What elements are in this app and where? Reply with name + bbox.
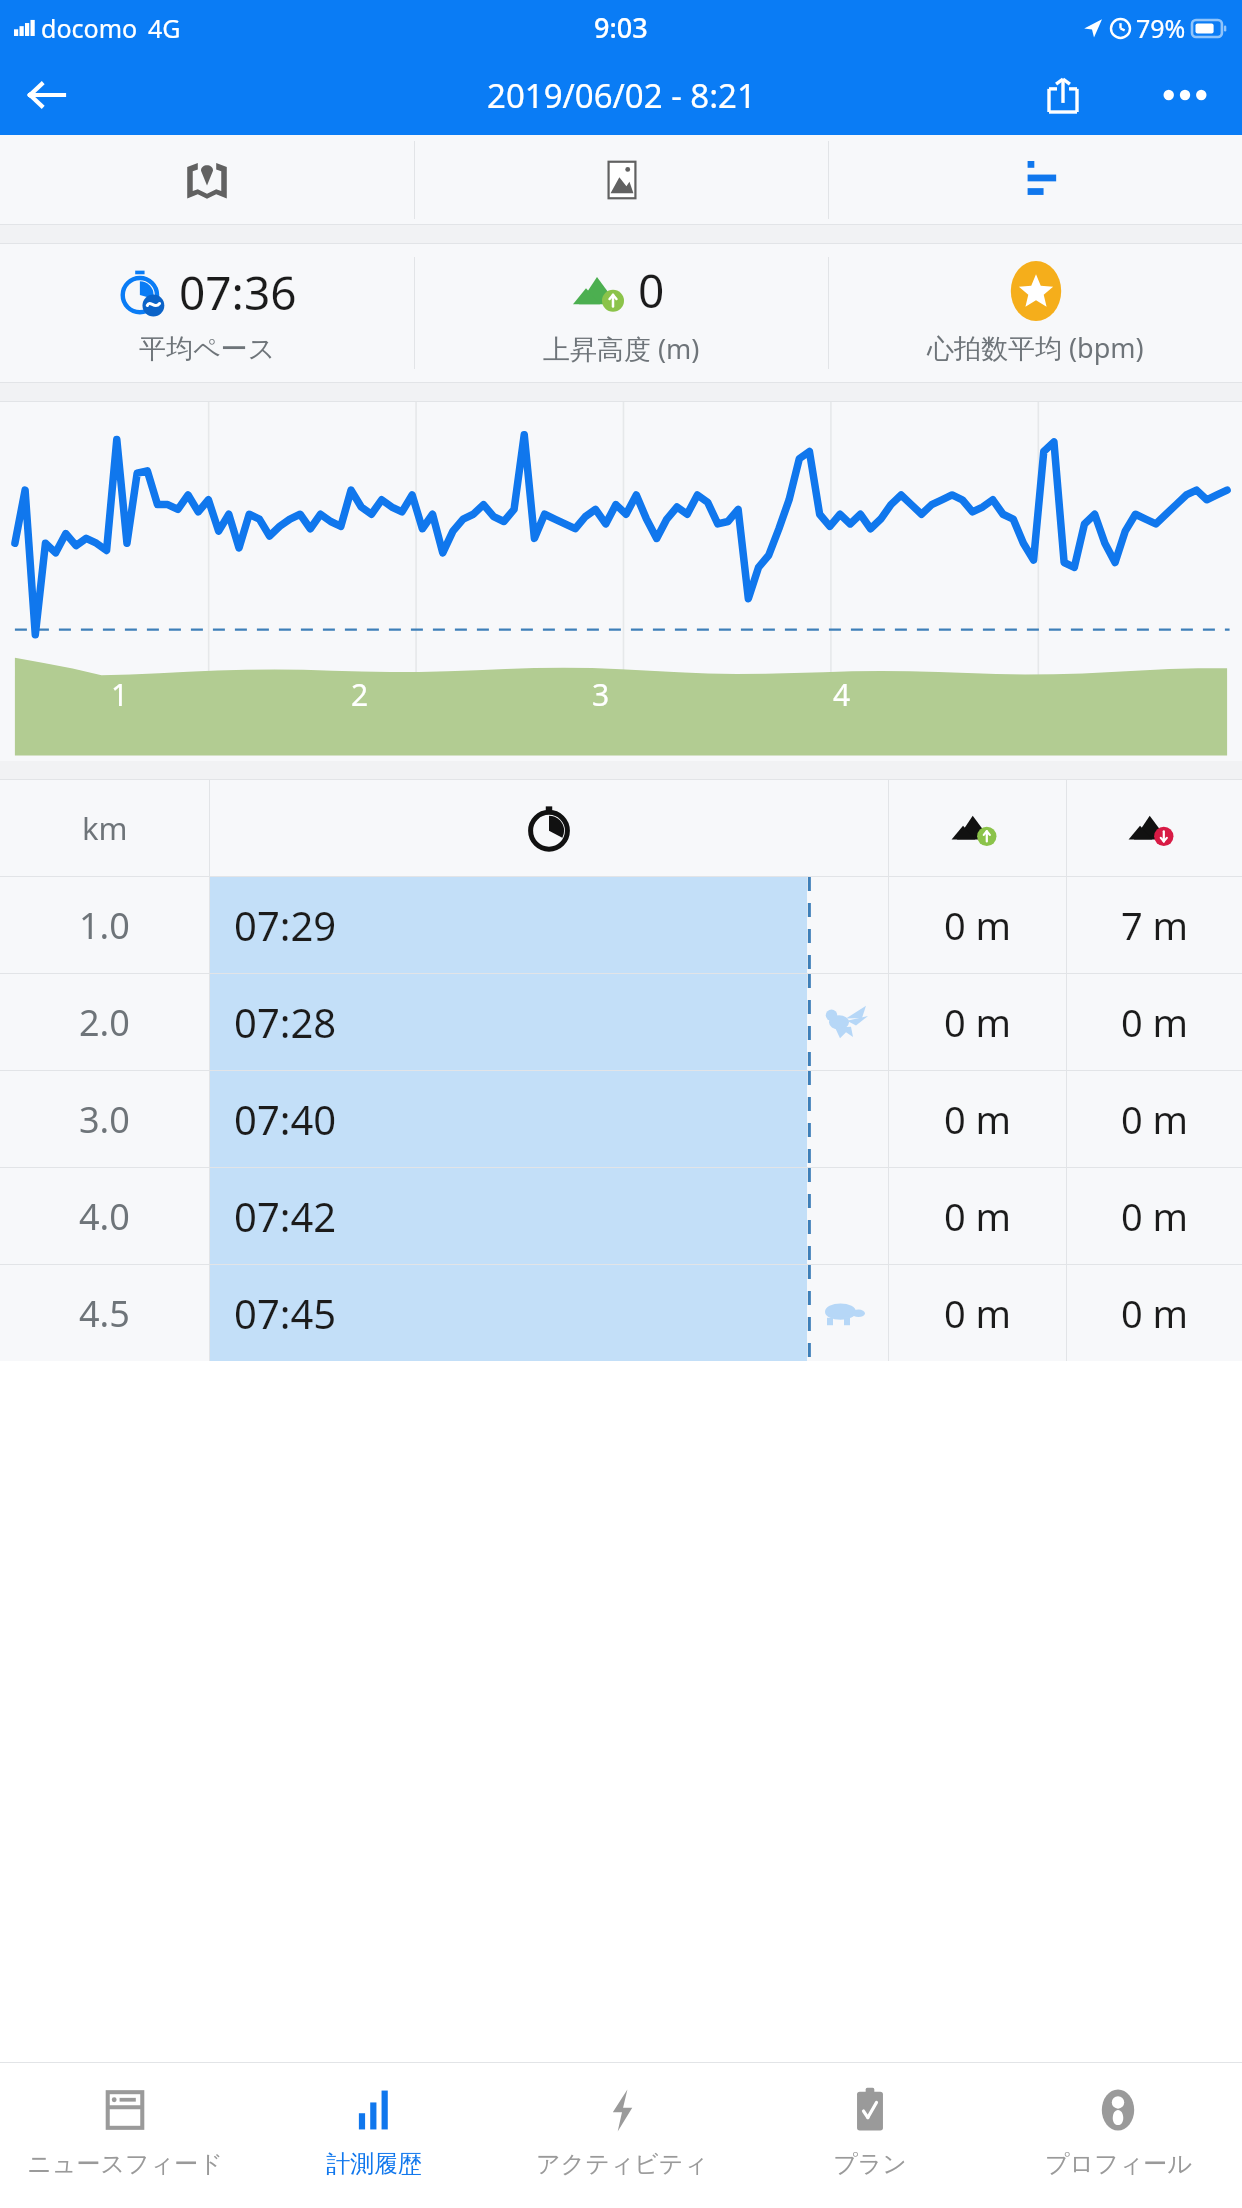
staticText: 0 m	[944, 1190, 1012, 1242]
button[interactable]: Map	[0, 135, 414, 225]
button[interactable]: 計測履歴	[249, 2063, 498, 2208]
staticText: 0 m	[1121, 1287, 1189, 1339]
button[interactable]: 1.0	[0, 877, 1242, 973]
staticText: 07:29	[234, 898, 337, 952]
button[interactable]: プラン	[746, 2063, 994, 2208]
staticText: 0 m	[1121, 1190, 1189, 1242]
button[interactable]: 心拍数平均 (bpm)	[829, 243, 1242, 383]
staticText: 2019/06/02 - 8:21	[487, 73, 756, 118]
button[interactable]: 2.0	[0, 974, 1242, 1070]
staticText: 4	[833, 674, 851, 715]
staticText: ニュースフィード	[27, 2149, 223, 2179]
staticText: 2	[351, 674, 369, 715]
button[interactable]: Splits	[829, 135, 1242, 225]
button[interactable]: Photos	[415, 135, 828, 225]
staticText: 0 m	[944, 996, 1012, 1048]
staticText: 2.0	[79, 998, 130, 1047]
staticText: 平均ペース	[139, 332, 276, 366]
staticText: km	[82, 807, 128, 849]
button[interactable]: Share	[1032, 64, 1094, 126]
staticText: 0 m	[944, 899, 1012, 951]
staticText: 3.0	[79, 1095, 130, 1144]
staticText: 07:36	[179, 261, 297, 324]
button[interactable]: アクティビティ	[498, 2063, 746, 2208]
staticText: 心拍数平均 (bpm)	[927, 329, 1144, 366]
staticText: 07:28	[234, 995, 337, 1049]
button[interactable]: 0	[415, 243, 828, 383]
staticText: 4.5	[79, 1289, 130, 1338]
button[interactable]: 3.0	[0, 1071, 1242, 1167]
button[interactable]: 07:36	[0, 243, 414, 383]
staticText: 07:40	[234, 1092, 337, 1146]
staticText: 07:42	[234, 1189, 337, 1243]
staticText: 3	[592, 674, 610, 715]
staticText: 計測履歴	[326, 2149, 422, 2179]
staticText: 上昇高度 (m)	[543, 330, 700, 367]
button[interactable]: Back	[14, 63, 78, 127]
staticText: 1.0	[79, 901, 130, 950]
staticText: 7 m	[1121, 899, 1189, 951]
button[interactable]: More options	[1154, 64, 1216, 126]
button[interactable]: 4.5	[0, 1265, 1242, 1361]
staticText: 9:03	[594, 9, 648, 46]
staticText: 0 m	[944, 1287, 1012, 1339]
staticText: 0 m	[1121, 1093, 1189, 1145]
staticText: 4.0	[79, 1192, 130, 1241]
button[interactable]: ニュースフィード	[0, 2063, 249, 2208]
button[interactable]: 4.0	[0, 1168, 1242, 1264]
staticText: 07:45	[234, 1286, 337, 1340]
staticText: docomo	[41, 11, 138, 45]
staticText: 1	[111, 674, 129, 715]
button[interactable]: プロフィール	[994, 2063, 1242, 2208]
staticText: 0 m	[1121, 996, 1189, 1048]
staticText: 79%	[1136, 11, 1186, 45]
staticText: プロフィール	[1045, 2149, 1192, 2179]
staticText: 4G	[148, 11, 181, 45]
staticText: アクティビティ	[536, 2149, 708, 2179]
staticText: 0 m	[944, 1093, 1012, 1145]
staticText: 0	[638, 259, 665, 322]
staticText: プラン	[833, 2149, 907, 2179]
